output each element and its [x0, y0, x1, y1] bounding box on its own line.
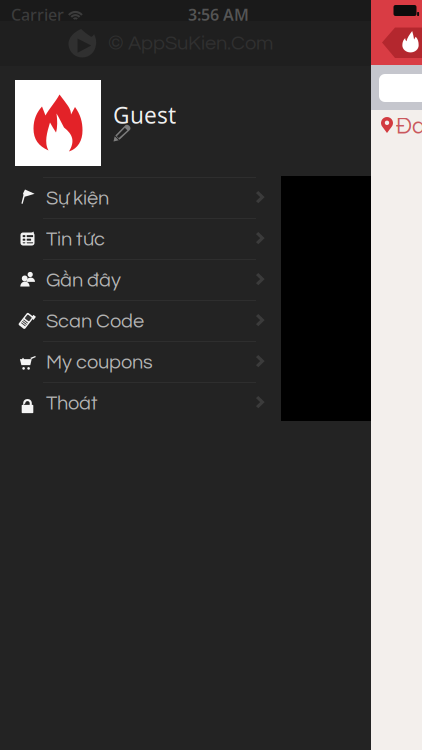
staticText: 3:56 AM: [188, 4, 249, 25]
staticText: Guest: [113, 100, 176, 130]
button[interactable]: Edit profile: [113, 124, 131, 142]
button[interactable]: My coupons: [0, 341, 371, 382]
staticText: Đan: [396, 115, 422, 138]
button[interactable]: Gần đây: [0, 259, 371, 300]
staticText: Gần đây: [46, 270, 121, 291]
staticText: Sự kiện: [46, 188, 109, 209]
staticText: Carrier: [11, 4, 64, 25]
staticText: Scan Code: [46, 311, 144, 332]
staticText: Tin tức: [46, 229, 105, 250]
button[interactable]: Tin tức: [0, 218, 371, 259]
button[interactable]: Thoát: [0, 382, 371, 423]
staticText: My coupons: [46, 352, 153, 373]
staticText: Thoát: [46, 393, 98, 414]
button[interactable]: Scan Code: [0, 300, 371, 341]
staticText: © AppSuKien.Com: [108, 33, 273, 54]
button[interactable]: Sự kiện: [0, 177, 371, 218]
